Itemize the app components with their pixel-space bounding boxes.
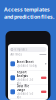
- staticText: Updated 2d ago: [17, 78, 34, 85]
- staticText: Report Analysis: [17, 71, 28, 78]
- button[interactable]: Sheet Sheet: [8, 57, 48, 71]
- staticText: Data File Usage: [17, 85, 30, 92]
- staticText: Updated today: [17, 64, 37, 67]
- staticText: Sheet Sheet: [17, 60, 34, 64]
- button[interactable]: Search: [8, 44, 48, 52]
- button[interactable]: Data File Usage: [8, 85, 48, 99]
- staticText: Updated 5d ago: [17, 92, 34, 99]
- staticText: All files: [10, 53, 21, 56]
- button[interactable]: Report Analysis: [8, 71, 48, 85]
- staticText: Access templates and prediction files.: [4, 6, 54, 20]
- staticText: Templates: [14, 48, 27, 51]
